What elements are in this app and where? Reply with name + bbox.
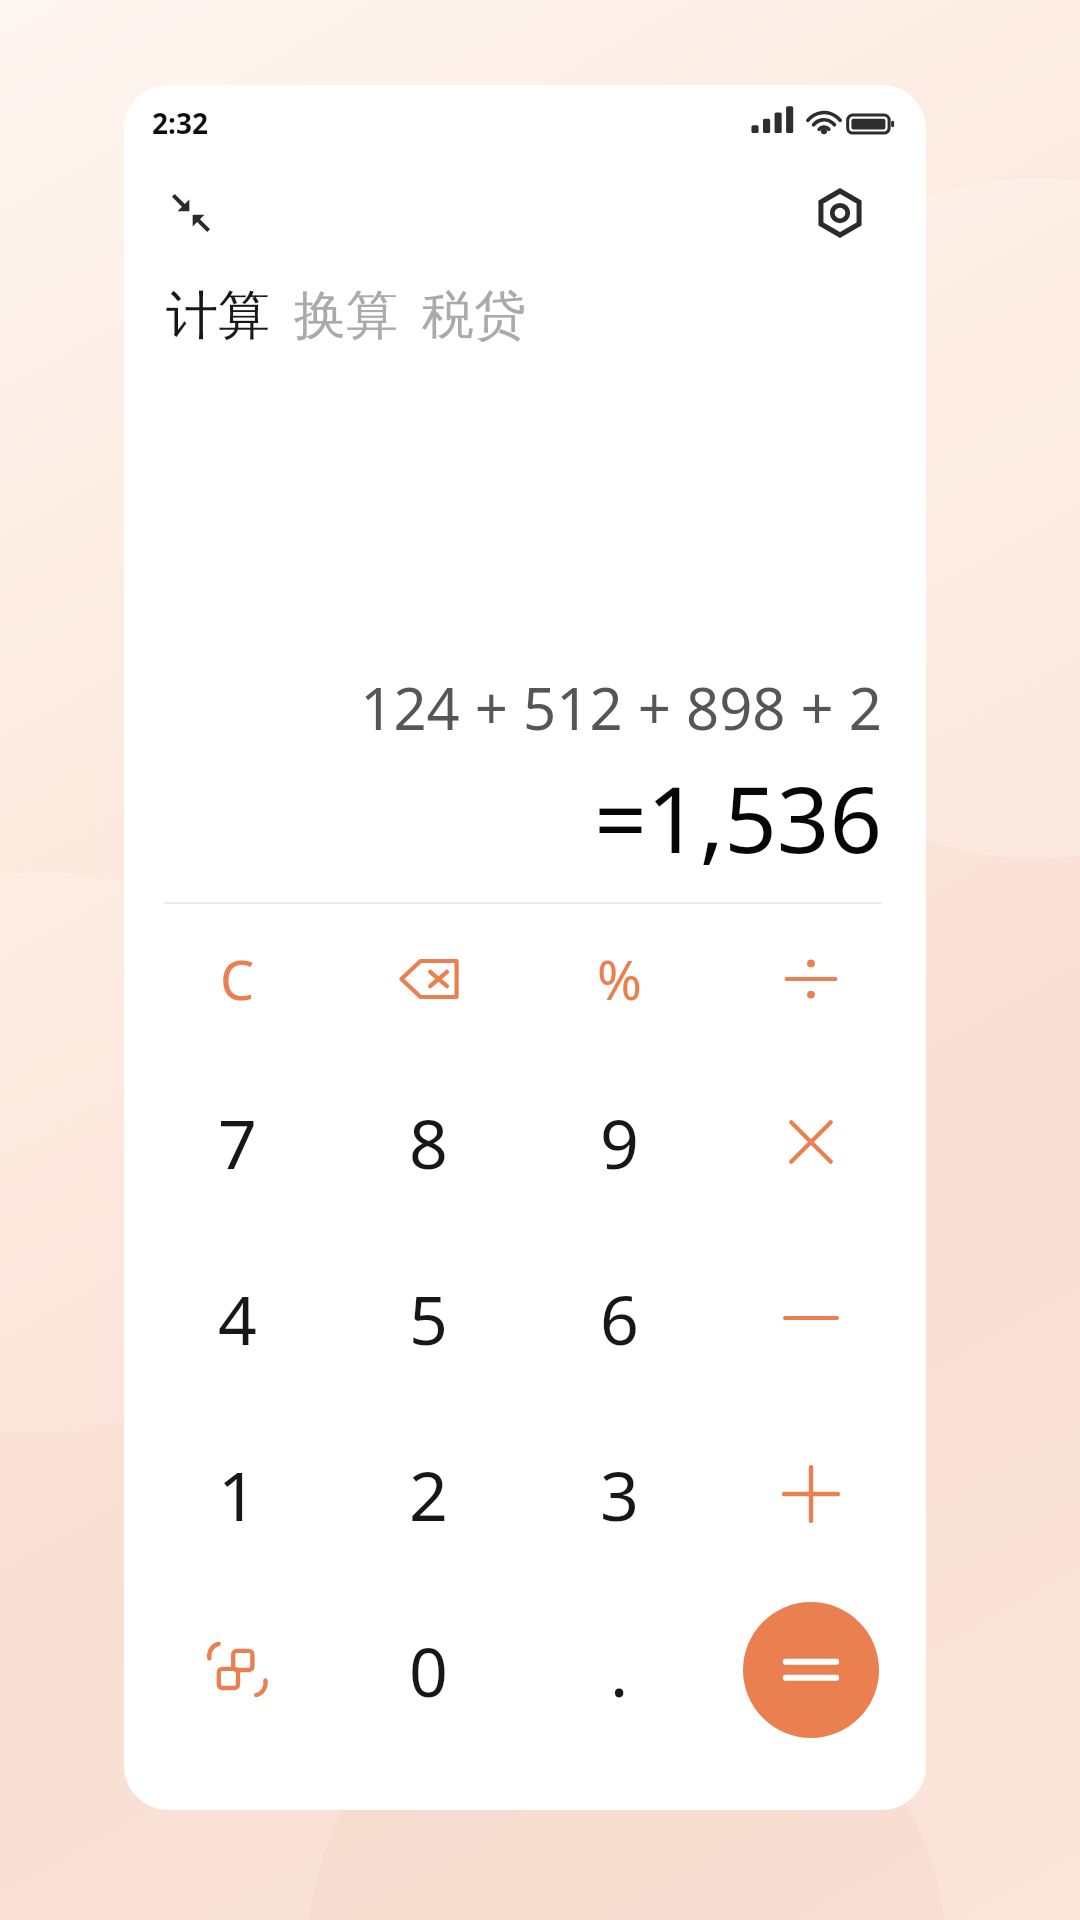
button[interactable]: 计算	[154, 273, 282, 359]
staticText: 5	[409, 1272, 448, 1365]
staticText: 1	[218, 1448, 257, 1541]
button[interactable]: Settings	[800, 173, 880, 253]
button[interactable]: C	[142, 904, 333, 1054]
button[interactable]: 0	[333, 1582, 524, 1758]
staticText: 换算	[294, 283, 398, 349]
button[interactable]: Backspace	[333, 904, 524, 1054]
button[interactable]: Equals	[743, 1602, 879, 1738]
button[interactable]: Multiply	[715, 1054, 906, 1230]
button[interactable]: 8	[333, 1054, 524, 1230]
button[interactable]: 3	[524, 1406, 715, 1582]
button[interactable]: 4	[142, 1230, 333, 1406]
staticText: 3	[600, 1448, 639, 1541]
button[interactable]: Convert	[142, 1582, 333, 1758]
button[interactable]: .	[524, 1582, 715, 1758]
staticText: .	[610, 1624, 629, 1717]
staticText: 2	[409, 1448, 448, 1541]
button[interactable]: 6	[524, 1230, 715, 1406]
button[interactable]: Collapse	[152, 174, 230, 252]
staticText: 计算	[166, 283, 270, 349]
staticText: 4	[218, 1272, 257, 1365]
staticText: 9	[600, 1096, 639, 1189]
button[interactable]: Add	[715, 1406, 906, 1582]
button[interactable]: 税贷	[410, 273, 538, 359]
staticText: 6	[600, 1272, 639, 1365]
button[interactable]: Subtract	[715, 1230, 906, 1406]
button[interactable]: 5	[333, 1230, 524, 1406]
button[interactable]: 2	[333, 1406, 524, 1582]
staticText: 2:32	[152, 104, 208, 142]
staticText: %	[597, 942, 642, 1016]
staticText: 8	[409, 1096, 448, 1189]
button[interactable]: Divide	[715, 904, 906, 1054]
button[interactable]: 1	[142, 1406, 333, 1582]
staticText: =1,536	[164, 755, 882, 880]
button[interactable]: 9	[524, 1054, 715, 1230]
button[interactable]: %	[524, 904, 715, 1054]
staticText: 7	[218, 1096, 257, 1189]
staticText: 0	[409, 1624, 448, 1717]
staticText: C	[220, 942, 255, 1016]
button[interactable]: 7	[142, 1054, 333, 1230]
staticText: 124 + 512 + 898 + 2	[164, 668, 882, 747]
staticText: 税贷	[422, 283, 526, 349]
button[interactable]: 换算	[282, 273, 410, 359]
